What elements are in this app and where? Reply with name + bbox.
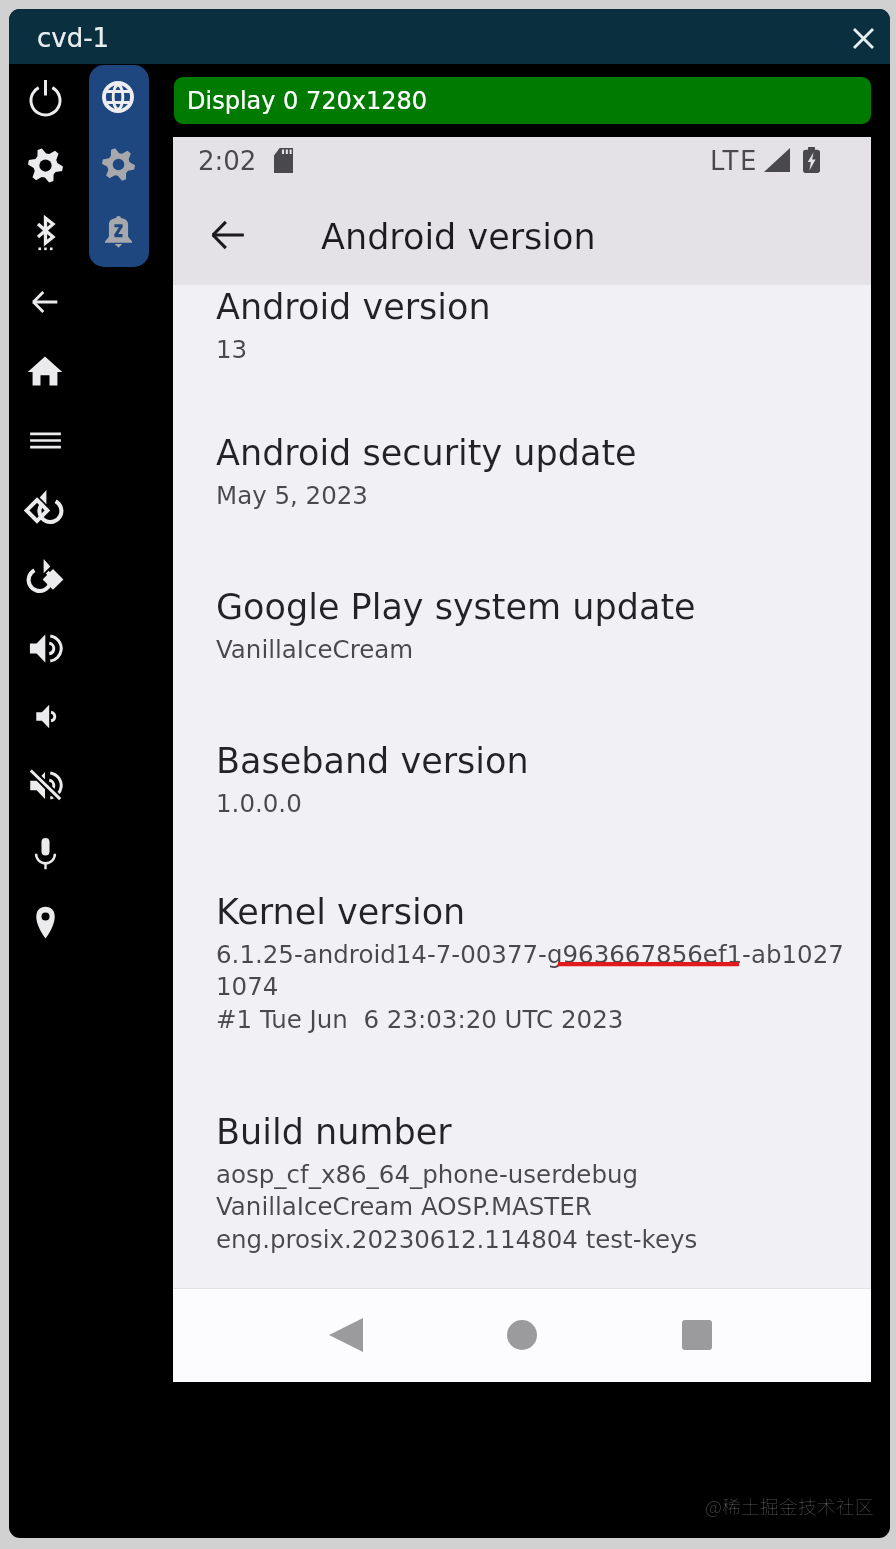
staticText: Display 0 720x1280: [187, 87, 428, 115]
staticText: Google Play system update: [216, 587, 696, 628]
button[interactable]: Kernel version: [173, 892, 871, 1059]
button[interactable]: Back: [15, 272, 75, 332]
staticText: Build number: [216, 1112, 452, 1153]
button[interactable]: Build number: [173, 1112, 871, 1279]
staticText: Kernel version: [216, 892, 466, 933]
staticText: 2:02: [198, 146, 257, 176]
button[interactable]: Volume up: [15, 618, 75, 678]
button[interactable]: Baseband version: [173, 741, 871, 842]
staticText: LTE: [710, 146, 759, 176]
button[interactable]: Recent apps: [667, 1305, 727, 1365]
staticText: Baseband version: [216, 741, 529, 782]
button[interactable]: Navigate back: [196, 203, 260, 267]
staticText: 13: [216, 335, 248, 364]
button[interactable]: Volume down: [15, 686, 75, 746]
button[interactable]: Rotate left: [15, 480, 75, 540]
button[interactable]: Settings: [15, 135, 75, 195]
button[interactable]: Bluetooth: [15, 203, 75, 263]
staticText: Android version: [321, 217, 596, 258]
staticText: 1.0.0.0: [216, 789, 302, 818]
button[interactable]: Emulator settings: [88, 134, 148, 194]
staticText: May 5, 2023: [216, 481, 368, 510]
button[interactable]: Display 0 720x1280: [174, 77, 871, 124]
staticText: Android version: [216, 287, 491, 328]
button[interactable]: Home: [492, 1305, 552, 1365]
staticText: VanillaIceCream: [216, 635, 414, 664]
button[interactable]: Microphone: [15, 823, 75, 883]
staticText: @稀土掘金技术社区: [705, 1492, 874, 1520]
button[interactable]: Close window: [846, 21, 880, 55]
button[interactable]: Android version: [173, 287, 871, 388]
button[interactable]: Location: [15, 892, 75, 952]
button[interactable]: Menu: [15, 410, 75, 470]
button[interactable]: Mute: [15, 755, 75, 815]
button[interactable]: Google Play system update: [173, 587, 871, 688]
staticText: 6.1.25-android14-7-00377-g963667856ef1-a…: [216, 940, 844, 1034]
button[interactable]: Notifications: [88, 201, 148, 261]
button[interactable]: Home: [15, 341, 75, 401]
staticText: cvd-1: [37, 23, 110, 53]
staticText: aosp_cf_x86_64_phone-userdebug VanillaIc…: [216, 1160, 698, 1254]
button[interactable]: Back: [316, 1305, 376, 1365]
button[interactable]: Rotate right: [15, 549, 75, 609]
button[interactable]: Android security update: [173, 433, 871, 534]
button[interactable]: Network settings: [88, 67, 148, 127]
button[interactable]: Power: [15, 67, 75, 127]
staticText: Android security update: [216, 433, 637, 474]
